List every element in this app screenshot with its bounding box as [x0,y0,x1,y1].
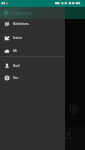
button[interactable]: Red [0,59,65,72]
button[interactable]: Compose [69,104,79,114]
staticText: Inicio [13,35,23,40]
staticText: Ver [13,75,19,80]
staticText: Red [13,63,20,68]
button[interactable]: Mi [0,44,65,57]
staticText: Boletines [13,21,29,26]
button[interactable]: Boletines [0,17,65,30]
staticText: Mi [13,48,18,53]
button[interactable]: Inicio [0,31,65,44]
staticText: Boletines [11,10,32,16]
button[interactable]: Ver [0,71,65,84]
button[interactable]: Home tab [64,131,73,145]
button[interactable]: Open navigation drawer [2,9,10,17]
